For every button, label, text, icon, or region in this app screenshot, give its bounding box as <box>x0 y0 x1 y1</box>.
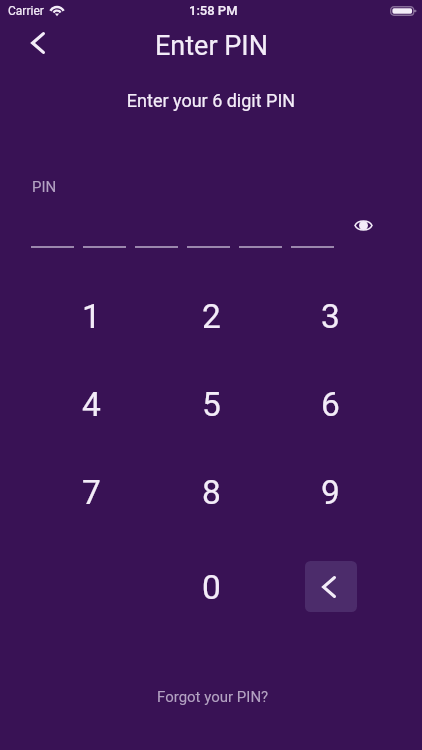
staticText: 8 <box>202 473 221 512</box>
staticText: 7 <box>82 473 101 512</box>
button[interactable]: 5 <box>156 363 266 445</box>
staticText: 2 <box>202 297 221 336</box>
staticText: Enter PIN <box>155 30 268 62</box>
button[interactable]: 3 <box>275 275 385 357</box>
staticText: Forgot your PIN? <box>157 688 269 706</box>
staticText: Enter your 6 digit PIN <box>0 90 422 111</box>
button[interactable]: PIN entry field <box>31 226 334 266</box>
button[interactable]: Backspace <box>305 561 357 612</box>
staticText: PIN <box>32 178 57 196</box>
button[interactable]: 7 <box>36 451 146 533</box>
button[interactable]: 2 <box>156 275 266 357</box>
staticText: 4 <box>82 385 101 424</box>
staticText: Carrier <box>8 4 44 18</box>
button[interactable]: Forgot your PIN? <box>143 674 283 720</box>
button[interactable]: Back <box>15 20 61 66</box>
button[interactable]: 8 <box>156 451 266 533</box>
button[interactable]: Show PIN <box>347 209 379 241</box>
staticText: 5 <box>202 385 221 424</box>
button[interactable]: 9 <box>275 451 385 533</box>
button[interactable]: 0 <box>156 546 266 628</box>
staticText: 0 <box>202 568 221 607</box>
button[interactable]: 1 <box>36 275 146 357</box>
staticText: 1:58 PM <box>189 3 238 18</box>
staticText: 1 <box>82 297 101 336</box>
button[interactable]: 4 <box>36 363 146 445</box>
staticText: 6 <box>321 385 340 424</box>
staticText: 3 <box>321 297 340 336</box>
button[interactable]: 6 <box>275 363 385 445</box>
staticText: 9 <box>321 473 340 512</box>
